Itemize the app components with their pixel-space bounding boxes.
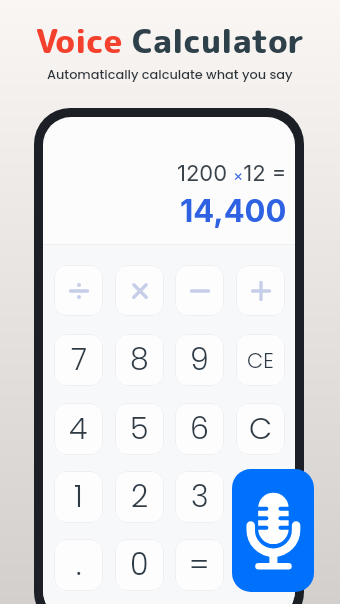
staticText: 9 [190, 339, 209, 381]
button[interactable]: Subtract [175, 265, 224, 316]
button[interactable]: 2 [115, 471, 164, 523]
staticText: 8 [130, 339, 149, 381]
staticText: 5 [130, 408, 149, 450]
staticText: 3 [191, 476, 209, 518]
staticText: CE [247, 346, 274, 375]
button[interactable]: = [175, 539, 224, 591]
staticText: . [76, 544, 82, 586]
button[interactable]: 1 [54, 471, 103, 523]
button[interactable]: 3 [175, 471, 224, 523]
button[interactable]: . [54, 539, 103, 591]
button[interactable]: 0 [115, 539, 164, 591]
button[interactable]: Add [236, 265, 285, 316]
staticText: 2 [131, 476, 149, 518]
button[interactable]: C [236, 403, 285, 455]
button[interactable]: 6 [175, 403, 224, 455]
staticText: 0 [130, 544, 149, 586]
button[interactable]: 8 [115, 334, 164, 386]
button[interactable]: Voice input [232, 469, 314, 592]
button[interactable]: 4 [54, 403, 103, 455]
staticText: Automatically calculate what you say [47, 65, 293, 83]
button[interactable]: 7 [54, 334, 103, 386]
button[interactable]: Divide [54, 265, 103, 316]
staticText: 14,400 [180, 192, 287, 230]
button[interactable]: 9 [175, 334, 224, 386]
staticText: 1200 ×12 = [177, 160, 287, 187]
staticText: 4 [69, 408, 88, 450]
button[interactable]: Multiply [115, 265, 164, 316]
staticText: = [189, 544, 210, 586]
staticText: 7 [71, 339, 87, 381]
staticText: 6 [190, 408, 209, 450]
staticText: C [249, 408, 273, 450]
staticText: 1 [74, 476, 83, 518]
button[interactable]: CE [236, 334, 285, 386]
staticText: Voice Calculator [36, 18, 305, 64]
button[interactable]: 5 [115, 403, 164, 455]
